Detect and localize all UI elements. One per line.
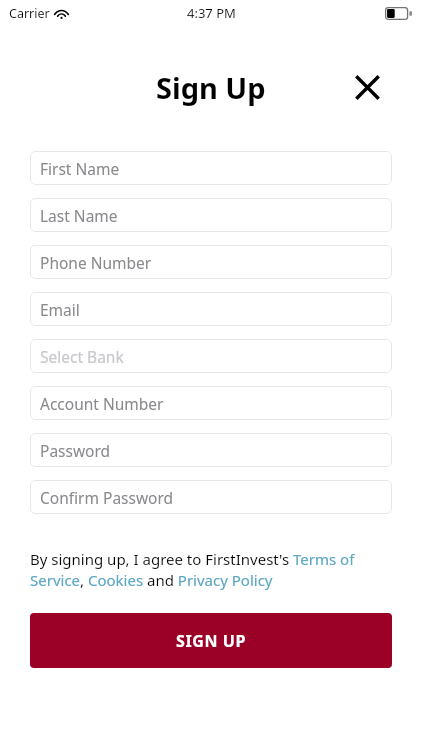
staticText: Email bbox=[40, 299, 80, 320]
button[interactable]: Password bbox=[30, 433, 392, 467]
button[interactable]: SIGN UP bbox=[30, 613, 392, 668]
staticText: Phone Number bbox=[40, 252, 152, 273]
button[interactable]: Email bbox=[30, 292, 392, 326]
button[interactable]: Phone Number bbox=[30, 245, 392, 279]
button[interactable]: Account Number bbox=[30, 386, 392, 420]
staticText: Confirm Password bbox=[40, 487, 174, 508]
staticText: Last Name bbox=[40, 205, 118, 226]
staticText: Account Number bbox=[40, 393, 164, 414]
button[interactable]: Last Name bbox=[30, 198, 392, 232]
staticText: Sign Up bbox=[156, 68, 266, 107]
button[interactable]: First Name bbox=[30, 151, 392, 185]
button[interactable]: Close bbox=[350, 70, 384, 104]
staticText: Carrier bbox=[9, 5, 50, 22]
button[interactable]: Select Bank bbox=[30, 339, 392, 373]
staticText: First Name bbox=[40, 158, 120, 179]
staticText: SIGN UP bbox=[176, 630, 247, 652]
staticText: By signing up, I agree to FirstInvest's … bbox=[30, 549, 392, 591]
staticText: Select Bank bbox=[40, 346, 124, 367]
staticText: 4:37 PM bbox=[187, 4, 236, 22]
button[interactable]: Confirm Password bbox=[30, 480, 392, 514]
button[interactable]: By signing up, I agree to FirstInvest's … bbox=[30, 549, 392, 591]
staticText: Password bbox=[40, 440, 111, 461]
